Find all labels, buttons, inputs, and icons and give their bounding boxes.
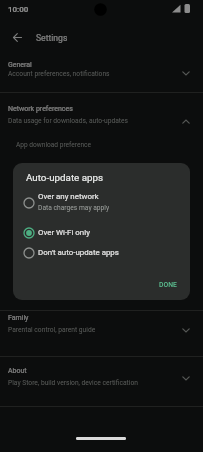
- button[interactable]: [13, 223, 190, 245]
- staticText: App download preference: [16, 141, 92, 149]
- staticText: Don't auto-update apps: [38, 248, 119, 257]
- button[interactable]: [11, 32, 24, 45]
- button[interactable]: DONE: [152, 276, 184, 293]
- button[interactable]: [0, 52, 203, 89]
- button[interactable]: [0, 360, 203, 400]
- staticText: Account preferences, notifications: [8, 70, 110, 78]
- staticText: Play Store, build version, device certif…: [8, 379, 138, 387]
- staticText: General: [8, 61, 32, 69]
- staticText: Over Wi-Fi only: [38, 228, 90, 237]
- staticText: Over any network: [38, 192, 99, 201]
- staticText: Family: [8, 314, 29, 322]
- staticText: 10:00: [8, 5, 29, 14]
- staticText: Network preferences: [8, 105, 73, 113]
- staticText: Data usage for downloads, auto-updates: [8, 117, 129, 125]
- staticText: Data charges may apply: [38, 204, 110, 212]
- button[interactable]: [13, 187, 190, 221]
- button[interactable]: [13, 245, 190, 267]
- staticText: Settings: [36, 33, 68, 43]
- staticText: About: [8, 367, 27, 375]
- staticText: Auto-update apps: [26, 172, 104, 183]
- button[interactable]: [0, 134, 203, 160]
- staticText: Parental control, parent guide: [8, 326, 96, 334]
- staticText: DONE: [159, 281, 177, 289]
- button[interactable]: [0, 310, 203, 350]
- button[interactable]: [0, 96, 203, 132]
